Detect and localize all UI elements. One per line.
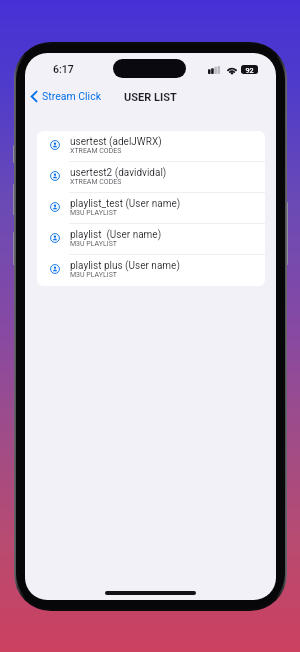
- button[interactable]: usertest2 (davidvidal): [37, 162, 265, 193]
- button[interactable]: Stream Click: [25, 86, 107, 106]
- button[interactable]: playlist (User name): [37, 224, 265, 255]
- staticText: playlist (User name): [70, 229, 162, 241]
- staticText: usertest (adelJWRX): [70, 136, 162, 148]
- staticText: 6:17: [53, 63, 74, 75]
- button[interactable]: playlist plus (User name): [37, 255, 265, 286]
- staticText: USER LIST: [124, 91, 177, 104]
- staticText: 92: [245, 66, 254, 74]
- staticText: M3U PLAYLIST: [70, 240, 118, 248]
- staticText: playlist_test (User name): [70, 198, 181, 210]
- staticText: playlist plus (User name): [70, 260, 180, 272]
- button[interactable]: usertest (adelJWRX): [37, 131, 265, 162]
- staticText: Stream Click: [42, 90, 101, 102]
- staticText: M3U PLAYLIST: [70, 271, 118, 279]
- staticText: usertest2 (davidvidal): [70, 167, 167, 179]
- staticText: M3U PLAYLIST: [70, 209, 118, 217]
- staticText: XTREAM CODES: [70, 178, 122, 186]
- staticText: XTREAM CODES: [70, 147, 122, 155]
- button[interactable]: playlist_test (User name): [37, 193, 265, 224]
